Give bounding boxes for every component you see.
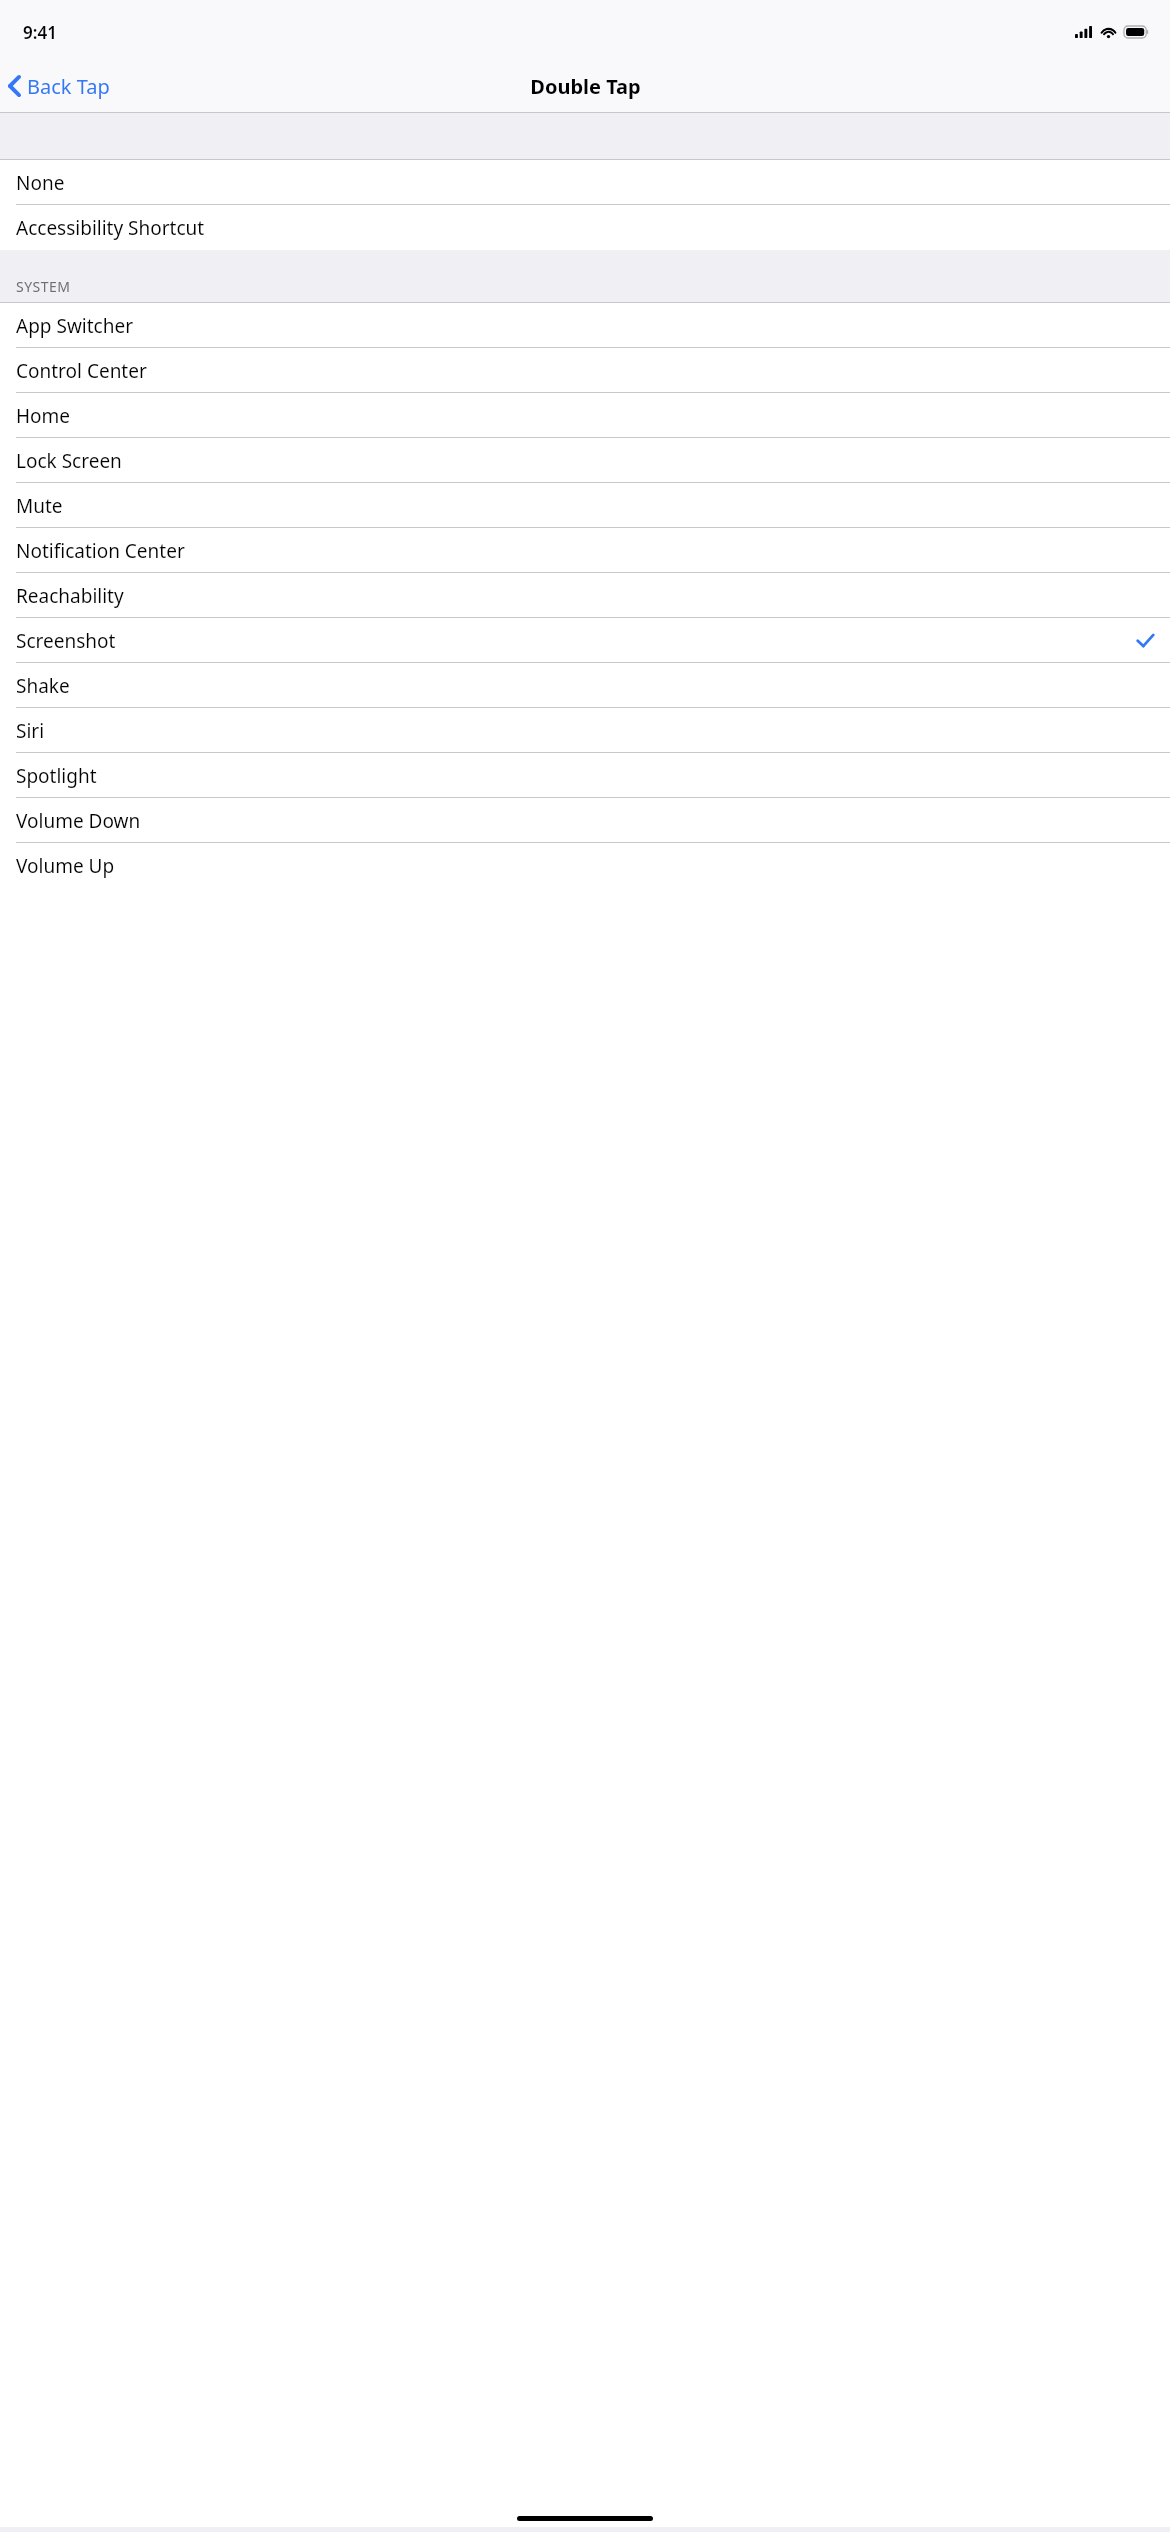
staticText: Lock Screen: [16, 448, 122, 474]
button[interactable]: Home: [0, 393, 1170, 438]
staticText: Spotlight: [16, 763, 97, 789]
button[interactable]: Reachability: [0, 573, 1170, 618]
button[interactable]: Volume Up: [0, 843, 1170, 888]
staticText: SYSTEM: [16, 277, 71, 296]
staticText: Double Tap: [530, 73, 641, 100]
button[interactable]: Shake: [0, 663, 1170, 708]
staticText: Shake: [16, 673, 70, 699]
button[interactable]: Accessibility Shortcut: [0, 205, 1170, 250]
other: Back: [8, 75, 21, 97]
staticText: Reachability: [16, 583, 124, 609]
button[interactable]: Mute: [0, 483, 1170, 528]
staticText: Back Tap: [27, 73, 110, 100]
staticText: Control Center: [16, 358, 147, 384]
button[interactable]: Screenshot: [0, 618, 1170, 663]
button[interactable]: App Switcher: [0, 303, 1170, 348]
staticText: Siri: [16, 718, 45, 744]
staticText: Mute: [16, 493, 63, 519]
staticText: None: [16, 170, 65, 196]
staticText: Home: [16, 403, 71, 429]
button[interactable]: Lock Screen: [0, 438, 1170, 483]
staticText: Volume Up: [16, 853, 115, 879]
other: Selected: [1137, 634, 1154, 647]
button[interactable]: Siri: [0, 708, 1170, 753]
staticText: Accessibility Shortcut: [16, 215, 205, 241]
button[interactable]: Back: [0, 59, 122, 113]
staticText: App Switcher: [16, 313, 134, 339]
staticText: 9:41: [23, 21, 57, 44]
staticText: Screenshot: [16, 628, 116, 654]
button[interactable]: Volume Down: [0, 798, 1170, 843]
button[interactable]: None: [0, 160, 1170, 205]
button[interactable]: Spotlight: [0, 753, 1170, 798]
staticText: Notification Center: [16, 538, 185, 564]
button[interactable]: Control Center: [0, 348, 1170, 393]
staticText: Volume Down: [16, 808, 141, 834]
button[interactable]: Notification Center: [0, 528, 1170, 573]
